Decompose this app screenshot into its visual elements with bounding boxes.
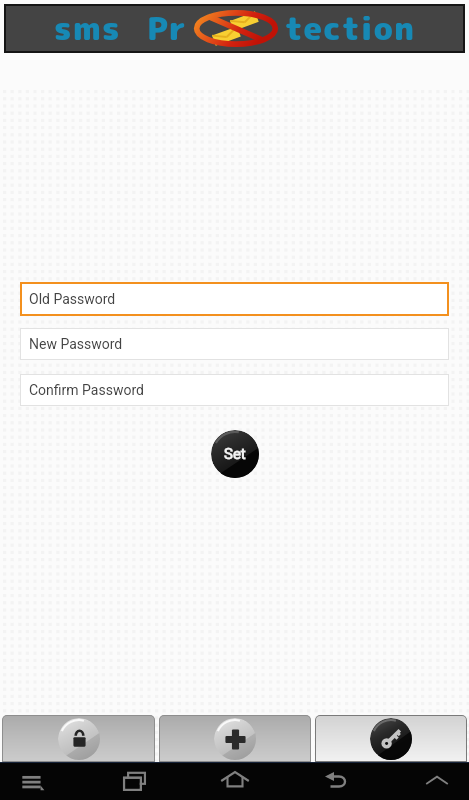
staticText: Confirm Password bbox=[29, 382, 144, 398]
button[interactable]: Lock bbox=[2, 715, 155, 762]
button[interactable]: New Password bbox=[20, 328, 449, 360]
staticText: sms bbox=[54, 6, 121, 51]
staticText: Pr bbox=[147, 6, 187, 51]
button[interactable]: Add bbox=[159, 715, 311, 762]
staticText: Old Password bbox=[29, 291, 116, 307]
staticText: tection bbox=[285, 6, 416, 51]
button[interactable]: Home bbox=[216, 762, 254, 800]
button[interactable]: Menu bbox=[14, 762, 52, 800]
button[interactable]: Recent apps bbox=[115, 762, 153, 800]
button[interactable]: Change password bbox=[315, 715, 467, 762]
button[interactable]: Set bbox=[211, 430, 259, 478]
button[interactable]: Expand bbox=[418, 762, 456, 800]
button[interactable]: Confirm Password bbox=[20, 374, 449, 406]
staticText: New Password bbox=[29, 336, 123, 352]
staticText: Set bbox=[224, 445, 246, 463]
button[interactable]: Back bbox=[317, 762, 355, 800]
button[interactable]: Old Password bbox=[20, 282, 449, 316]
